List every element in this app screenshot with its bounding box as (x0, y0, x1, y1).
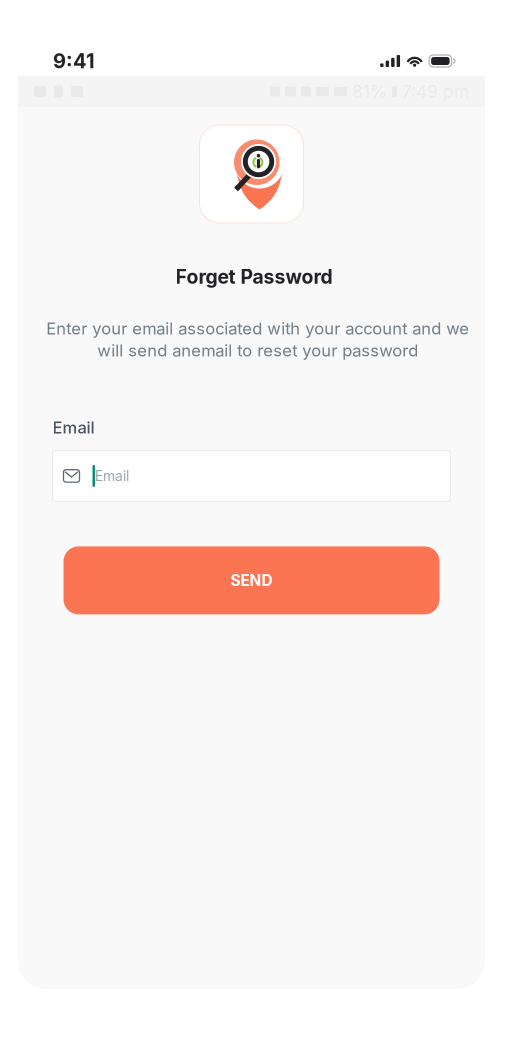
staticText: Email (52, 417, 94, 437)
staticText: Email (95, 467, 129, 484)
staticText: 7:49 pm (402, 81, 469, 102)
button[interactable]: SEND (63, 546, 439, 614)
staticText: Forget Password (175, 265, 332, 288)
staticText: Enter your email associated with your ac… (46, 318, 469, 360)
staticText: 81% (352, 81, 387, 102)
staticText: SEND (230, 571, 272, 590)
staticText: 9:41 (53, 49, 95, 73)
